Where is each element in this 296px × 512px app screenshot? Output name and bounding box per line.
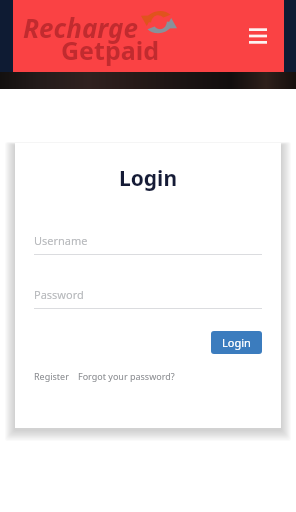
button[interactable]: Login <box>211 331 262 354</box>
staticText: Password <box>34 287 84 302</box>
staticText: Forgot your password? <box>78 370 175 382</box>
staticText: Login <box>34 164 262 193</box>
staticText: Username <box>34 233 88 248</box>
staticText: Login <box>222 335 251 350</box>
button[interactable]: Forgot your password? <box>78 370 175 382</box>
staticText: Getpaid <box>61 33 159 67</box>
button[interactable]: Username <box>34 233 262 255</box>
staticText: Register <box>34 370 69 382</box>
button[interactable]: Open navigation menu <box>243 21 273 51</box>
staticText: Recharge <box>23 10 138 45</box>
button[interactable]: Register <box>34 370 69 382</box>
button[interactable]: Recharge Getpaid home <box>23 4 213 64</box>
button[interactable]: Password <box>34 287 262 309</box>
